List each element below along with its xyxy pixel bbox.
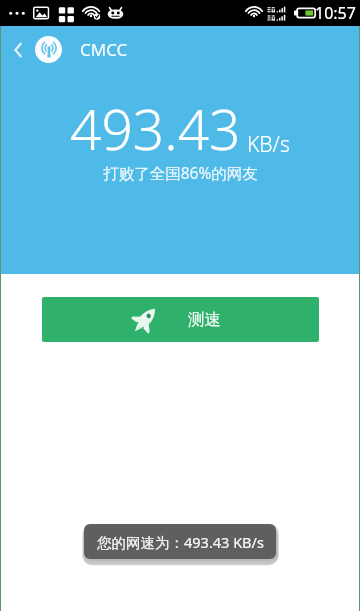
staticText: 10:57 <box>315 2 356 24</box>
staticText: 测速 <box>188 309 221 330</box>
staticText: 您的网速为：493.43 KB/s <box>97 532 264 552</box>
button[interactable]: 测速 <box>42 297 319 342</box>
staticText: 打败了全国86%的网友 <box>103 162 258 183</box>
button[interactable]: Back <box>6 38 30 62</box>
staticText: CMCC <box>80 38 128 61</box>
staticText: 493.43 <box>70 91 241 166</box>
staticText: KB/s <box>247 130 290 159</box>
